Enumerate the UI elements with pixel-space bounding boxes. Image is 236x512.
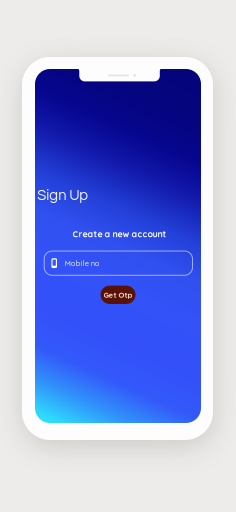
staticText: Mobile no <box>65 258 100 268</box>
staticText: Create a new account <box>72 228 166 239</box>
staticText: Sign Up <box>37 188 88 203</box>
button[interactable]: Get Otp <box>100 286 135 304</box>
staticText: Get Otp <box>103 290 132 300</box>
